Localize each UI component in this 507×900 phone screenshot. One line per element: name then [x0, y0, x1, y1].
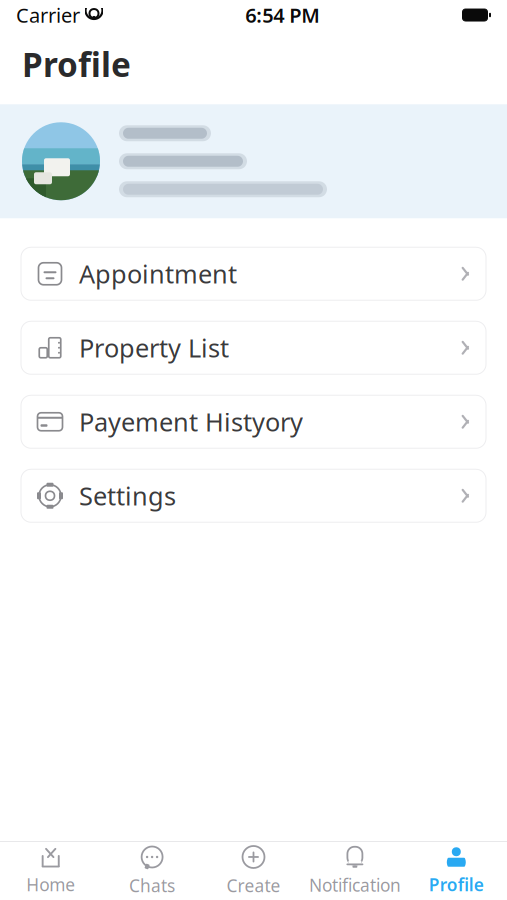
staticText: Settings: [79, 479, 176, 512]
button[interactable]: Notification: [304, 842, 406, 900]
button[interactable]: Create: [203, 842, 304, 900]
staticText: Chats: [129, 874, 175, 897]
button[interactable]: Payement Histyory: [21, 395, 486, 448]
staticText: Payement Histyory: [79, 405, 303, 438]
button[interactable]: Chats: [101, 842, 203, 900]
staticText: Profile: [22, 42, 131, 86]
staticText: Property List: [79, 331, 229, 364]
staticText: 6:54 PM: [245, 2, 320, 28]
staticText: Home: [26, 873, 75, 896]
button[interactable]: Property List: [21, 321, 486, 374]
staticText: Create: [226, 874, 280, 897]
staticText: Appointment: [79, 257, 237, 290]
staticText: Notification: [309, 873, 401, 896]
button[interactable]: Home: [0, 842, 101, 900]
staticText: Carrier: [16, 2, 80, 28]
button[interactable]: Settings: [21, 469, 486, 522]
button[interactable]: Appointment: [21, 247, 486, 300]
staticText: Profile: [429, 873, 484, 896]
button[interactable]: Profile: [406, 842, 507, 900]
